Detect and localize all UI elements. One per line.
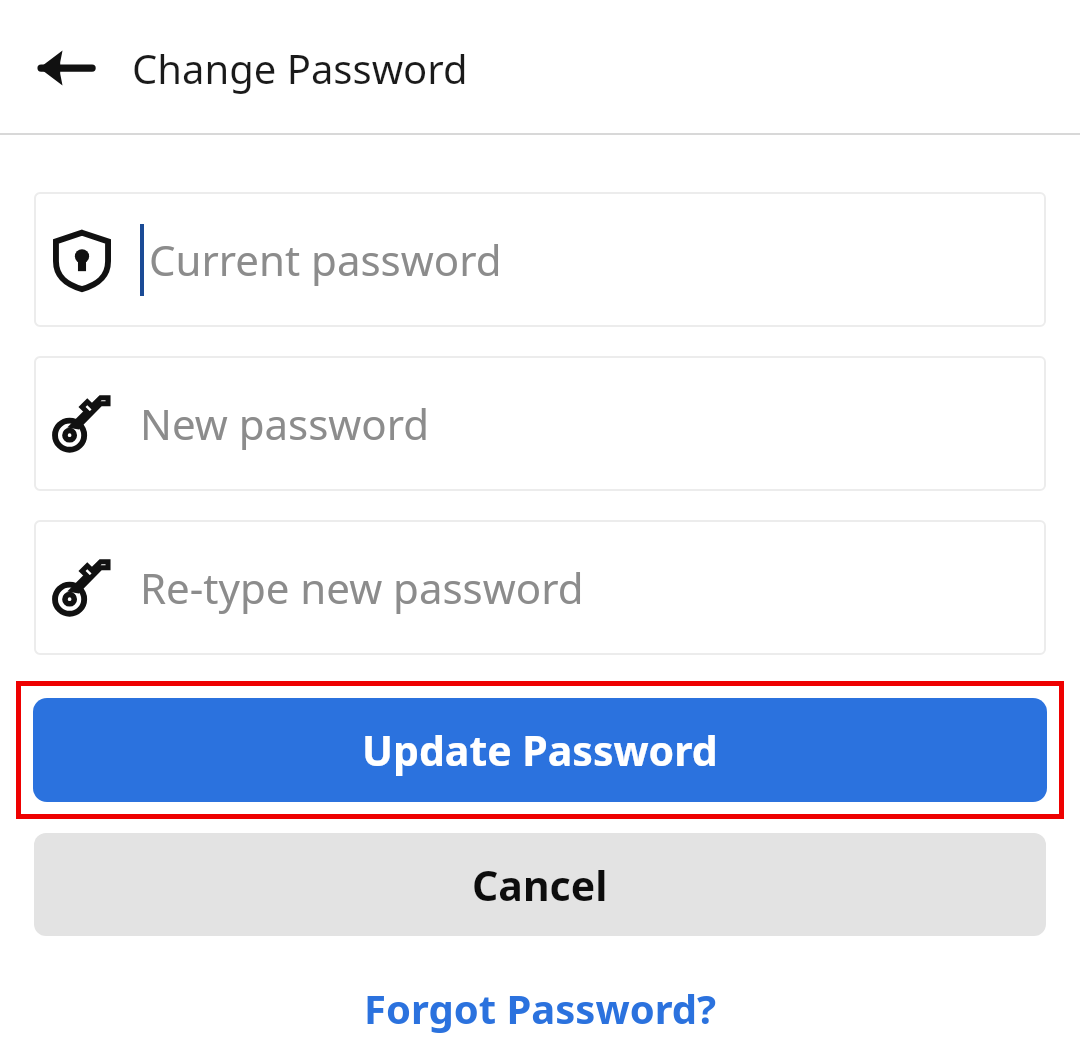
staticText: New password <box>140 395 430 452</box>
staticText: Change Password <box>132 41 468 95</box>
staticText: Re-type new password <box>140 559 584 616</box>
staticText: Cancel <box>472 857 608 913</box>
button[interactable]: Re-type new password <box>34 520 1046 655</box>
button[interactable]: Current password <box>34 192 1046 327</box>
button[interactable]: Update Password <box>33 698 1047 802</box>
staticText: Update Password <box>362 722 718 778</box>
button[interactable]: Cancel <box>34 833 1046 936</box>
button[interactable]: Back <box>34 36 98 100</box>
staticText: Forgot Password? <box>364 981 717 1035</box>
button[interactable]: Forgot Password? <box>0 976 1080 1040</box>
button[interactable]: New password <box>34 356 1046 491</box>
staticText: Current password <box>149 231 502 288</box>
